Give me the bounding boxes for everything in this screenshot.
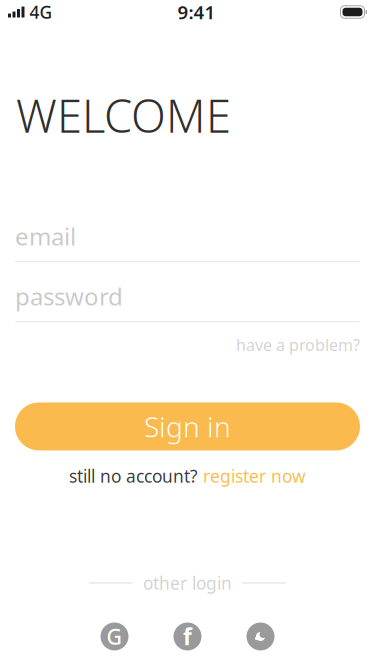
button[interactable]: Sign in <box>15 402 360 450</box>
staticText: f <box>183 621 192 651</box>
staticText: still no account? <box>69 464 203 487</box>
staticText: register now <box>203 464 306 487</box>
staticText: have a problem? <box>236 334 360 355</box>
button[interactable]: Sign in with Twitter <box>246 622 274 650</box>
button[interactable]: Sign in with Facebook <box>173 622 201 650</box>
staticText: password <box>15 280 123 312</box>
staticText: WELCOME <box>16 85 231 145</box>
staticText: Sign in <box>144 408 231 445</box>
button[interactable]: Sign in with Google <box>100 622 128 650</box>
staticText: G <box>106 622 122 651</box>
staticText: email <box>15 220 76 252</box>
button[interactable]: have a problem? <box>236 331 360 358</box>
button[interactable]: register now <box>203 464 306 487</box>
staticText: 4G <box>29 0 52 23</box>
staticText: 9:41 <box>177 0 215 24</box>
staticText: other login <box>143 571 232 594</box>
